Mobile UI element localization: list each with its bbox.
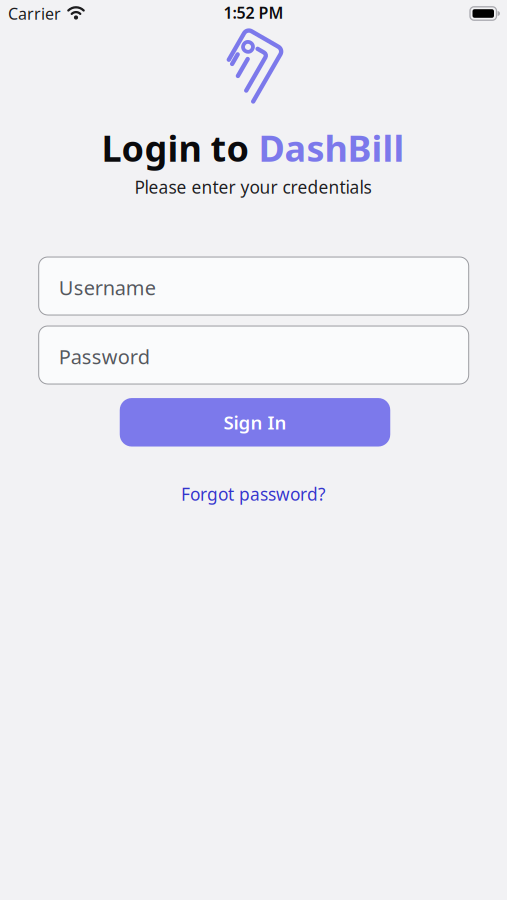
staticText: Login to [101, 124, 258, 172]
textField[interactable]: Username [59, 273, 469, 299]
staticText: Password [59, 343, 150, 370]
staticText: Forgot password? [181, 482, 326, 505]
button[interactable]: Forgot password? [181, 482, 326, 505]
staticText: DashBill [258, 124, 404, 172]
button[interactable]: Sign In [120, 398, 390, 447]
textField[interactable]: Password [59, 342, 469, 368]
staticText: Username [59, 274, 156, 301]
staticText: Carrier [8, 3, 61, 24]
staticText: 1:52 PM [223, 2, 283, 23]
staticText: Please enter your credentials [134, 175, 371, 198]
staticText: Sign In [223, 410, 286, 435]
staticText: Username [59, 273, 156, 299]
staticText: Password [59, 342, 150, 368]
